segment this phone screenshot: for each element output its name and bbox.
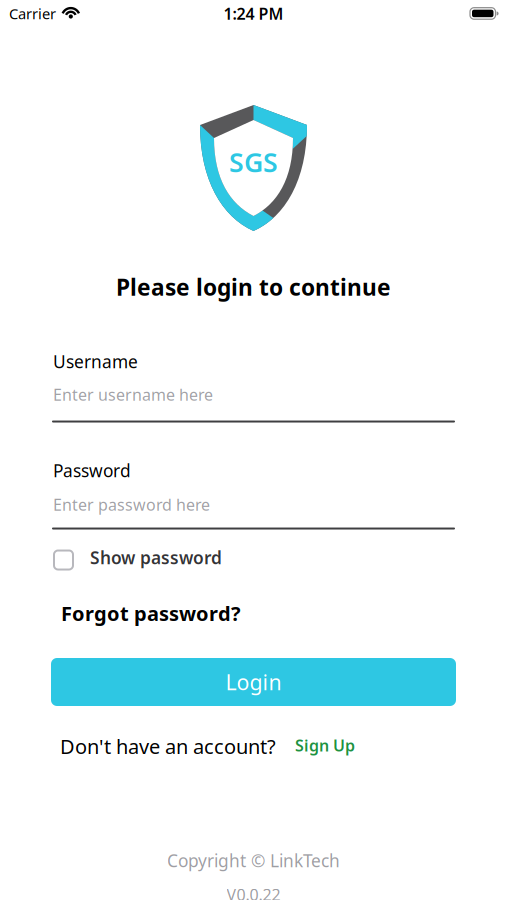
staticText: Show password bbox=[90, 546, 222, 569]
staticText: Carrier bbox=[9, 4, 56, 23]
staticText: V0.0.22 bbox=[226, 884, 280, 900]
staticText: 1:24 PM bbox=[223, 3, 283, 24]
button[interactable]: Sign Up bbox=[295, 736, 355, 757]
staticText: Enter password here bbox=[53, 494, 210, 515]
staticText: Password bbox=[53, 459, 131, 482]
staticText: Don't have an account? bbox=[60, 733, 276, 760]
staticText: Forgot password? bbox=[61, 600, 241, 627]
button[interactable]: Login bbox=[51, 658, 456, 706]
staticText: Username bbox=[53, 350, 138, 373]
staticText: Copyright © LinkTech bbox=[167, 849, 340, 872]
staticText: Please login to continue bbox=[116, 272, 391, 302]
staticText: Sign Up bbox=[295, 735, 355, 756]
staticText: Enter username here bbox=[53, 384, 213, 405]
staticText: Login bbox=[225, 668, 281, 696]
staticText: SGS bbox=[229, 144, 278, 180]
button[interactable]: Forgot password? bbox=[61, 600, 241, 627]
button[interactable]: Show password bbox=[54, 546, 222, 569]
